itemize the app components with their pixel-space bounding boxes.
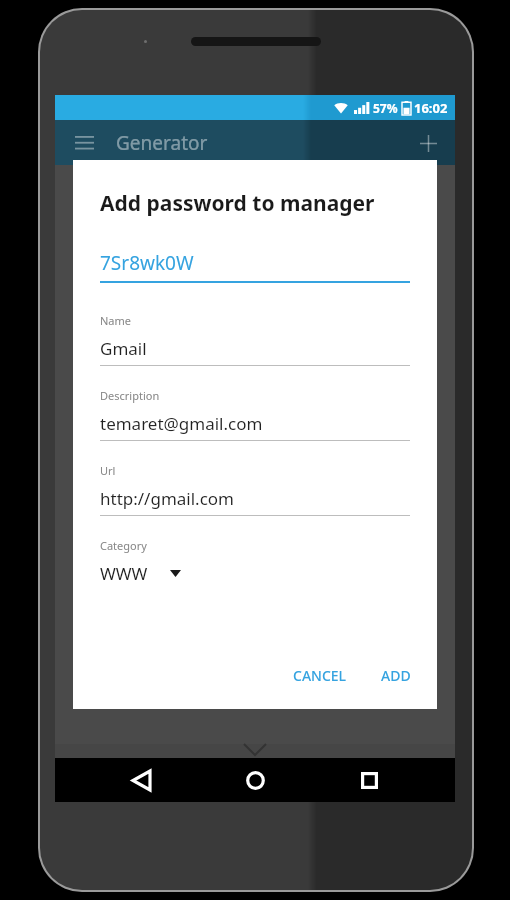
button[interactable]: Add — [411, 126, 445, 160]
staticText: http://gmail.com — [100, 487, 234, 510]
staticText: Url — [100, 463, 116, 478]
staticText: 7Sr8wk0W — [100, 250, 194, 276]
button[interactable]: Home — [227, 758, 283, 802]
button[interactable]: Back — [113, 758, 169, 802]
button[interactable]: ADD — [373, 658, 419, 693]
button[interactable]: Name — [73, 313, 437, 366]
staticText: Category — [100, 538, 147, 553]
button[interactable]: Recent apps — [341, 758, 397, 802]
button[interactable]: CANCEL — [285, 658, 355, 693]
staticText: Description — [100, 388, 160, 403]
staticText: Add password to manager — [100, 189, 375, 218]
button[interactable]: Url — [73, 463, 437, 516]
staticText: ADD — [381, 666, 411, 685]
staticText: WWW — [100, 562, 148, 585]
button[interactable]: Generate password — [365, 637, 417, 689]
button[interactable]: Category — [73, 538, 437, 585]
staticText: 16:02 — [414, 99, 448, 117]
staticText: Gmail — [100, 337, 147, 360]
staticText: temaret@gmail.com — [100, 412, 263, 435]
button[interactable]: Open navigation menu — [67, 126, 101, 160]
button[interactable]: Description — [73, 388, 437, 441]
staticText: CANCEL — [293, 666, 347, 685]
staticText: Name — [100, 313, 132, 328]
staticText: Generator — [116, 130, 208, 156]
staticText: 57% — [373, 100, 398, 116]
